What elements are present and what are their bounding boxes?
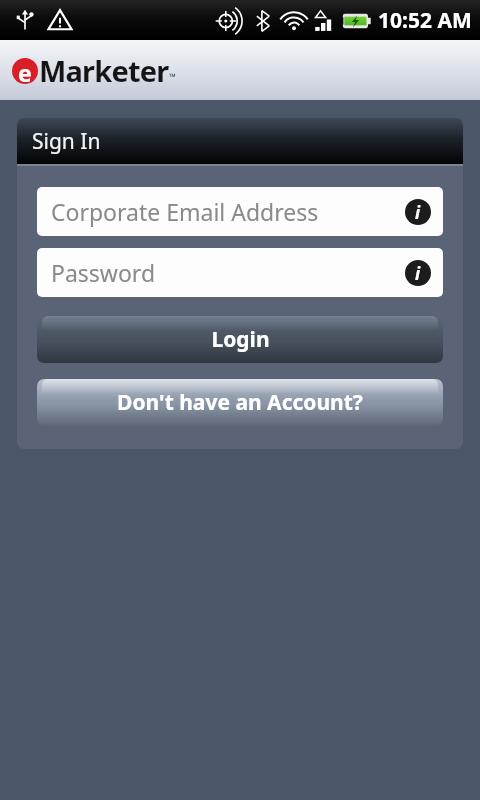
staticText: e bbox=[18, 57, 32, 83]
staticText: 10:52 AM bbox=[378, 6, 472, 35]
staticText: Marketer bbox=[39, 51, 169, 90]
staticText: Login bbox=[211, 325, 270, 354]
staticText: ™ bbox=[169, 70, 176, 82]
staticText: Corporate Email Address bbox=[51, 196, 319, 227]
button[interactable]: Don't have an Account? bbox=[37, 379, 443, 426]
button[interactable]: Information about Password bbox=[405, 260, 431, 286]
button[interactable]: Corporate Email Address bbox=[37, 187, 443, 236]
staticText: Don't have an Account? bbox=[117, 388, 363, 417]
button[interactable]: Login bbox=[37, 316, 443, 363]
staticText: i bbox=[415, 201, 421, 224]
staticText: Password bbox=[51, 257, 156, 288]
staticText: i bbox=[415, 262, 421, 285]
staticText: Sign In bbox=[32, 127, 101, 156]
button[interactable]: Information about Corporate Email Addres… bbox=[405, 199, 431, 225]
button[interactable]: Password bbox=[37, 248, 443, 297]
